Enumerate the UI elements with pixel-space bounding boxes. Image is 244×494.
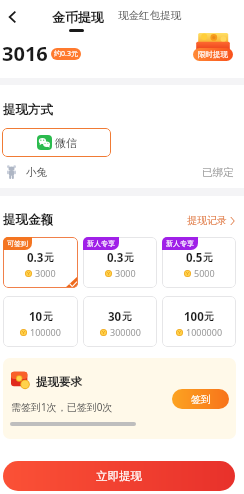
button[interactable]: 0.3 xyxy=(3,237,78,288)
button[interactable]: 100 xyxy=(162,296,236,347)
staticText: 5000 xyxy=(194,267,215,279)
staticText: 元 xyxy=(203,251,213,264)
staticText: 元 xyxy=(44,251,54,264)
staticText: 签到 xyxy=(191,393,211,406)
staticText: 可签到 xyxy=(7,239,28,248)
staticText: 3000 xyxy=(35,267,56,279)
staticText: 0.5 xyxy=(186,250,203,266)
staticText: 0.3 xyxy=(107,250,124,266)
staticText: 立即提现 xyxy=(96,469,142,483)
staticText: 元 xyxy=(124,251,134,264)
staticText: 小兔 xyxy=(26,166,47,179)
button[interactable]: 签到 xyxy=(172,389,229,409)
staticText: 1000000 xyxy=(186,326,223,338)
staticText: 新人专享 xyxy=(87,239,115,248)
button[interactable]: 现金红包提现 xyxy=(118,9,181,22)
staticText: 提现金额 xyxy=(3,212,53,228)
staticText: 金币提现 xyxy=(52,9,104,25)
staticText: 元 xyxy=(204,310,214,323)
button[interactable]: 0.3 xyxy=(83,237,157,288)
staticText: 已绑定 xyxy=(202,166,234,179)
button[interactable]: 30 xyxy=(83,296,157,347)
button[interactable]: 微信 xyxy=(2,128,111,157)
staticText: 提现要求 xyxy=(36,375,82,389)
button[interactable]: 0.5 xyxy=(162,237,236,288)
button[interactable]: 提现记录 xyxy=(187,214,235,227)
staticText: 3016 xyxy=(2,40,48,67)
staticText: 元 xyxy=(43,310,53,323)
staticText: 新人专享 xyxy=(166,239,194,248)
button[interactable]: 立即提现 xyxy=(3,461,235,491)
staticText: 3000 xyxy=(115,267,136,279)
staticText: 0.3 xyxy=(27,250,44,266)
button[interactable]: 金币提现 xyxy=(52,9,104,32)
button[interactable]: Back xyxy=(2,7,22,27)
staticText: 限时提现 xyxy=(198,50,228,59)
staticText: 100 xyxy=(184,309,204,325)
staticText: 提现方式 xyxy=(3,102,53,118)
staticText: 需签到1次，已签到0次 xyxy=(11,400,113,414)
staticText: 约0.3元 xyxy=(54,49,78,59)
staticText: 300000 xyxy=(110,326,141,338)
button[interactable]: 10 xyxy=(3,296,78,347)
button[interactable]: 限时提现 xyxy=(193,48,233,61)
staticText: 30 xyxy=(108,309,122,325)
staticText: 微信 xyxy=(55,136,77,150)
staticText: 100000 xyxy=(30,326,61,338)
staticText: 10 xyxy=(29,309,43,325)
staticText: 元 xyxy=(122,310,132,323)
staticText: 提现记录 xyxy=(187,214,227,227)
